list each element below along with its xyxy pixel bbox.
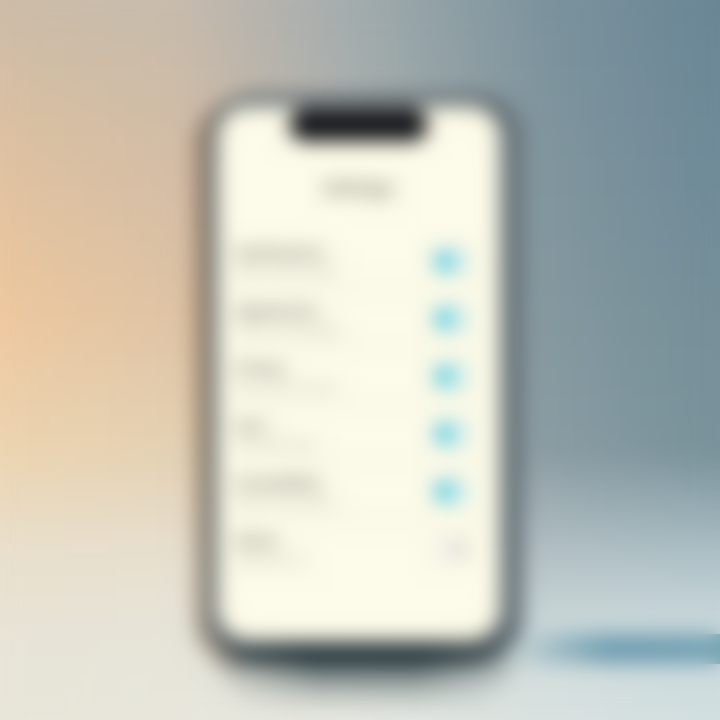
staticText: Privacy: [235, 358, 285, 377]
staticText: Theme and display: [235, 321, 340, 337]
staticText: About: [235, 530, 278, 550]
button[interactable]: Accessibility: [217, 463, 500, 519]
staticText: iCloud backup: [235, 436, 313, 452]
staticText: Vision and motion: [235, 494, 334, 510]
staticText: Settings: [323, 176, 393, 199]
staticText: Appearance: [235, 300, 317, 320]
staticText: Notifications: [235, 243, 324, 262]
button[interactable]: About: [217, 520, 500, 577]
button[interactable]: Privacy: [217, 348, 500, 404]
staticText: Accessibility: [235, 473, 320, 492]
staticText: Alerts and sounds: [235, 264, 335, 280]
staticText: Version 4.2.1: [235, 551, 307, 567]
button[interactable]: Appearance: [217, 290, 500, 347]
button[interactable]: Notifications: [217, 233, 500, 289]
button[interactable]: Sync: [217, 405, 500, 462]
staticText: Data and security: [235, 379, 333, 395]
staticText: Sync: [235, 415, 267, 435]
